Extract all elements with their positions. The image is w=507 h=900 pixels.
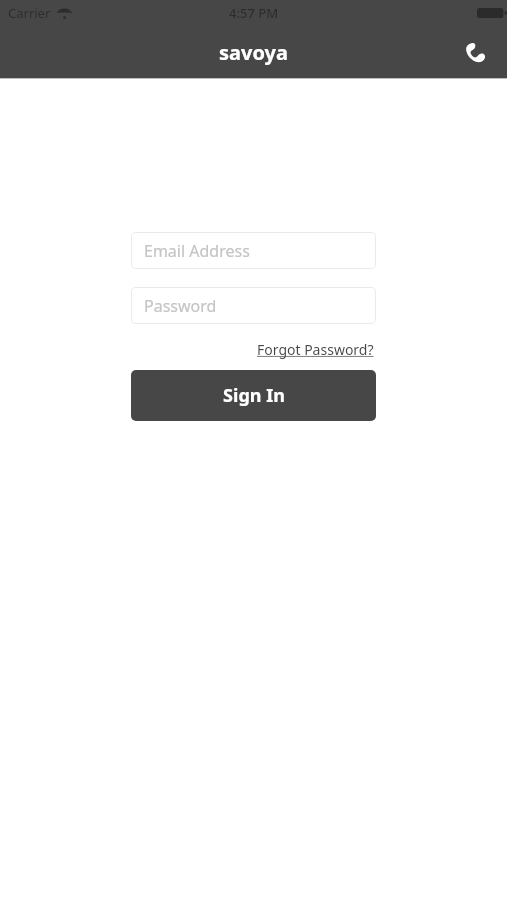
button[interactable]: Forgot Password?: [255, 338, 376, 361]
staticText: Forgot Password?: [257, 340, 374, 359]
staticText: Carrier: [8, 4, 51, 22]
staticText: savoya: [219, 39, 288, 66]
button[interactable]: Call: [453, 30, 497, 74]
staticText: Email Address: [144, 240, 250, 262]
staticText: Password: [144, 295, 217, 317]
button[interactable]: Password: [131, 287, 376, 324]
button[interactable]: Sign In: [131, 370, 376, 421]
staticText: Sign In: [223, 383, 285, 408]
staticText: 4:57 PM: [229, 4, 279, 22]
button[interactable]: Email Address: [131, 232, 376, 269]
